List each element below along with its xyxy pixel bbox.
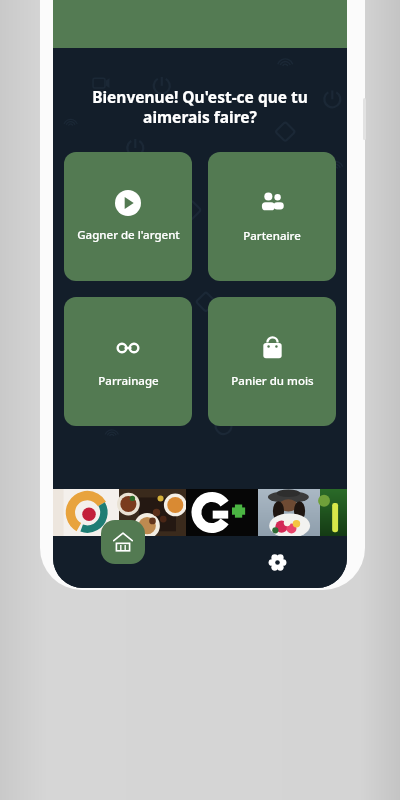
staticText: Gagner de l'argent xyxy=(77,227,180,243)
button[interactable] xyxy=(320,489,347,536)
staticText: Partenaire xyxy=(243,228,301,244)
button[interactable] xyxy=(258,489,320,536)
button[interactable]: Panier du mois xyxy=(208,297,336,426)
staticText: Panier du mois xyxy=(231,373,314,389)
button[interactable]: Gagner de l'argent xyxy=(64,152,192,281)
staticText: Parrainage xyxy=(98,373,159,389)
staticText: Bienvenue! Qu'est-ce que tu aimerais fai… xyxy=(71,86,329,128)
button[interactable]: Partenaire xyxy=(208,152,336,281)
button[interactable] xyxy=(119,489,186,536)
button[interactable]: Settings xyxy=(259,544,295,580)
button[interactable]: Parrainage xyxy=(64,297,192,426)
button[interactable]: Home xyxy=(101,520,145,564)
button[interactable] xyxy=(53,489,119,536)
button[interactable] xyxy=(186,489,258,536)
